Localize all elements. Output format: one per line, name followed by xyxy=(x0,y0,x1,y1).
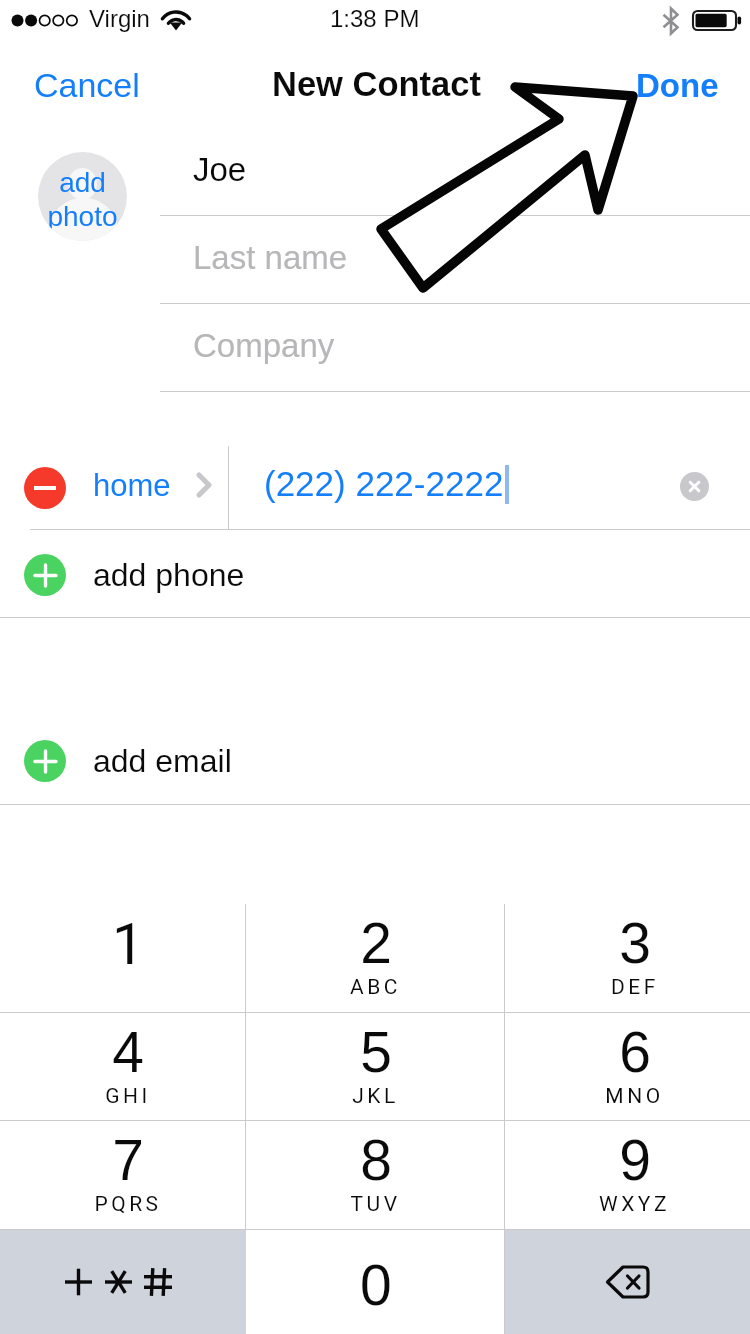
button[interactable]: 7 xyxy=(0,1121,246,1230)
button[interactable]: 4 xyxy=(0,1013,246,1121)
button[interactable]: 6 xyxy=(505,1013,750,1121)
staticText: home xyxy=(93,468,171,503)
button[interactable]: Last name xyxy=(160,216,750,304)
button[interactable]: (222) 222-2222 xyxy=(229,446,750,530)
staticText: 9 xyxy=(619,1128,651,1192)
staticText: Joe xyxy=(193,151,247,188)
staticText: WXYZ xyxy=(599,1192,670,1217)
staticText: 7 xyxy=(112,1128,144,1192)
staticText: add xyxy=(59,167,106,198)
staticText: 8 xyxy=(360,1128,392,1192)
staticText: MNO xyxy=(605,1084,664,1109)
button[interactable]: Cancel xyxy=(0,42,164,128)
button[interactable]: home xyxy=(0,446,228,530)
staticText: 1:38 PM xyxy=(330,5,420,32)
button[interactable]: Done xyxy=(612,42,750,128)
button[interactable]: Backspace xyxy=(505,1230,750,1334)
staticText: DEF xyxy=(611,975,659,1000)
button[interactable]: 5 xyxy=(246,1013,505,1121)
button[interactable]: 0 xyxy=(246,1230,505,1334)
button[interactable]: 3 xyxy=(505,904,750,1013)
staticText: Company xyxy=(193,327,335,364)
staticText: New Contact xyxy=(272,65,481,104)
staticText: 5 xyxy=(360,1020,392,1084)
button[interactable]: 9 xyxy=(505,1121,750,1230)
staticText: add phone xyxy=(93,557,245,593)
staticText: add email xyxy=(93,743,232,779)
button[interactable]: Clear text xyxy=(680,472,709,501)
staticText: 6 xyxy=(619,1020,651,1084)
staticText: PQRS xyxy=(94,1192,162,1217)
button[interactable]: add email xyxy=(0,718,750,804)
staticText: photo xyxy=(47,201,118,232)
staticText: Last name xyxy=(193,239,348,276)
staticText: 2 xyxy=(360,911,392,975)
staticText: 0 xyxy=(360,1253,392,1317)
button[interactable]: Add photo xyxy=(38,152,127,241)
staticText: Done xyxy=(636,67,719,104)
button[interactable]: 1 xyxy=(0,904,246,1013)
staticText: TUV xyxy=(350,1192,401,1217)
staticText: 4 xyxy=(112,1020,144,1084)
button[interactable]: 2 xyxy=(246,904,505,1013)
button[interactable]: add phone xyxy=(0,532,750,617)
button[interactable]: Joe xyxy=(160,128,750,216)
staticText: Cancel xyxy=(34,66,140,104)
staticText: Virgin xyxy=(89,5,150,32)
staticText: GHI xyxy=(105,1084,151,1109)
button[interactable]: Company xyxy=(160,304,750,392)
staticText: JKL xyxy=(352,1084,399,1109)
staticText: 3 xyxy=(619,911,651,975)
staticText: (222) 222-2222 xyxy=(264,464,504,503)
button[interactable]: 8 xyxy=(246,1121,505,1230)
staticText: ABC xyxy=(350,975,401,1000)
button[interactable]: Symbols xyxy=(0,1230,246,1334)
staticText: 1 xyxy=(112,911,145,978)
